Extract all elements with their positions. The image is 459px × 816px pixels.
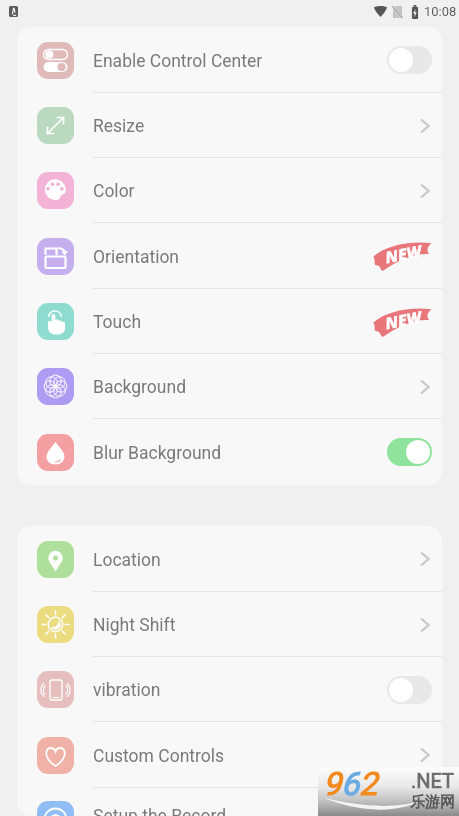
- staticText: Orientation: [93, 247, 180, 268]
- staticText: Custom Controls: [93, 746, 225, 767]
- staticText: NEW: [383, 240, 424, 268]
- button[interactable]: Blur Background: [17, 419, 442, 485]
- button[interactable]: vibration: [17, 657, 442, 722]
- staticText: Resize: [93, 116, 145, 137]
- staticText: Touch: [93, 312, 142, 333]
- staticText: Enable Control Center: [93, 51, 263, 72]
- staticText: Location: [93, 550, 161, 571]
- staticText: 10:08: [424, 4, 457, 19]
- staticText: NEW: [383, 306, 424, 334]
- staticText: Blur Background: [93, 443, 222, 464]
- staticText: Background: [93, 377, 187, 398]
- staticText: vibration: [93, 680, 161, 701]
- staticText: 乐游网: [410, 793, 455, 812]
- button[interactable]: Custom Controls: [17, 722, 442, 788]
- button[interactable]: Setup the Record: [17, 788, 442, 816]
- button[interactable]: Night Shift: [17, 592, 442, 657]
- staticText: 9: [323, 765, 341, 803]
- button[interactable]: Background: [17, 354, 442, 419]
- staticText: 6: [341, 765, 359, 803]
- staticText: Night Shift: [93, 615, 176, 636]
- button[interactable]: [387, 438, 432, 466]
- button[interactable]: Touch: [17, 289, 442, 354]
- button[interactable]: Location: [17, 526, 442, 592]
- button[interactable]: Enable Control Center: [17, 27, 442, 93]
- button[interactable]: Color: [17, 158, 442, 223]
- button[interactable]: [387, 46, 432, 74]
- staticText: 2: [359, 765, 377, 803]
- button[interactable]: Orientation: [17, 223, 442, 289]
- staticText: Color: [93, 181, 135, 202]
- button[interactable]: Resize: [17, 93, 442, 158]
- staticText: .NET: [411, 769, 455, 792]
- button[interactable]: [387, 676, 432, 704]
- staticText: Setup the Record: [93, 806, 227, 816]
